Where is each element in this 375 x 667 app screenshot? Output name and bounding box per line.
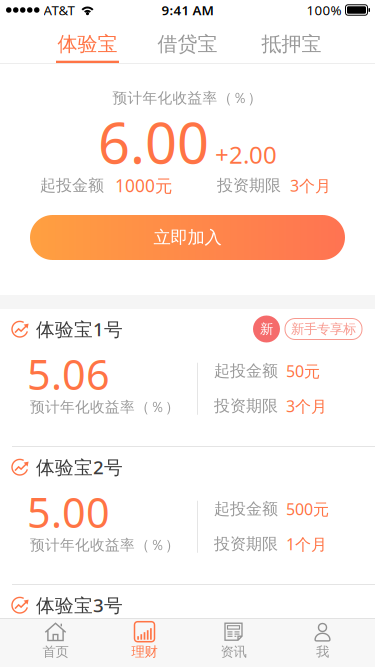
staticText: 1000元 xyxy=(115,174,172,197)
staticText: 新手专享标 xyxy=(291,321,356,337)
staticText: 体验宝 xyxy=(57,32,117,56)
button[interactable]: 体验宝1号 xyxy=(0,309,375,446)
button[interactable]: 资讯 xyxy=(189,619,278,667)
button[interactable]: 抵押宝 xyxy=(261,20,322,63)
staticText: 起投金额 xyxy=(214,637,278,657)
staticText: 起投金额 xyxy=(214,361,278,381)
staticText: 投资期限 xyxy=(217,176,281,195)
staticText: 借贷宝 xyxy=(157,32,217,56)
staticText: 5.00 xyxy=(27,485,110,539)
staticText: 新 xyxy=(260,321,273,337)
staticText: 50元 xyxy=(286,360,320,382)
button[interactable]: 借贷宝 xyxy=(157,20,218,63)
staticText: 立即加入 xyxy=(153,227,221,248)
staticText: 投资期限 xyxy=(214,534,278,554)
staticText: 起投金额 xyxy=(214,499,278,519)
staticText: 预计年化收益率（％） xyxy=(112,89,262,107)
staticText: 我 xyxy=(316,644,329,660)
staticText: 预计年化收益率（％） xyxy=(30,536,180,554)
staticText: 100% xyxy=(306,1,341,19)
staticText: AT&T xyxy=(43,1,74,19)
button[interactable]: 体验宝3号 xyxy=(0,585,375,667)
staticText: 预计年化收益率（％） xyxy=(30,398,180,416)
staticText: 体验宝2号 xyxy=(36,455,123,479)
staticText: 5.06 xyxy=(27,347,110,401)
staticText: 首页 xyxy=(42,644,68,660)
staticText: 理财 xyxy=(131,644,157,660)
button[interactable]: 首页 xyxy=(11,619,100,667)
staticText: 6.00 xyxy=(98,105,209,179)
button[interactable]: 理财 xyxy=(100,619,189,667)
staticText: 3个月 xyxy=(286,395,327,417)
staticText: 起投金额 xyxy=(40,176,104,195)
button[interactable]: 立即加入 xyxy=(30,215,345,260)
staticText: 5.00 xyxy=(27,623,110,667)
staticText: 体验宝1号 xyxy=(36,317,123,341)
staticText: 500元 xyxy=(286,636,329,658)
staticText: 3个月 xyxy=(290,175,331,196)
staticText: +2.00 xyxy=(215,138,277,170)
staticText: 投资期限 xyxy=(214,396,278,416)
staticText: 体验宝3号 xyxy=(36,593,123,617)
button[interactable]: 体验宝2号 xyxy=(0,447,375,584)
button[interactable]: 体验宝 xyxy=(56,20,119,63)
staticText: 500元 xyxy=(286,498,329,520)
button[interactable]: 我 xyxy=(278,619,367,667)
staticText: 9:41 AM xyxy=(161,1,213,19)
staticText: 资讯 xyxy=(220,644,246,660)
staticText: 1个月 xyxy=(286,533,327,555)
staticText: 抵押宝 xyxy=(261,32,321,56)
